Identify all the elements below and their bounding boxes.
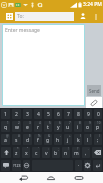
staticText: h [56,137,60,144]
staticText: 4 [37,111,40,118]
button[interactable]: ; [94,134,102,145]
button[interactable]: k [74,134,82,145]
button[interactable]: Shift [1,147,11,158]
staticText: 6 [59,121,61,125]
staticText: p [96,124,100,131]
staticText: f [37,137,39,144]
staticText: " [27,147,29,151]
button[interactable]: 7 [64,109,72,119]
staticText: ' [38,147,39,151]
staticText: c [35,150,38,157]
button[interactable]: b [52,147,60,158]
button[interactable]: Emoji [1,160,10,171]
staticText: y [57,124,60,131]
button[interactable]: ?123 [12,160,21,171]
button[interactable]: r [34,121,42,132]
button[interactable]: n [62,147,70,158]
button[interactable]: x [22,147,30,158]
button[interactable]: a [1,134,10,145]
button[interactable]: 9 [84,109,92,119]
staticText: - [60,134,61,138]
button[interactable]: 2 [12,109,21,119]
button[interactable]: Attach [86,97,102,108]
button[interactable]: Enter [93,160,102,171]
button[interactable]: p [94,121,102,132]
button[interactable]: Back [10,172,37,183]
staticText: 5 [47,111,50,118]
button[interactable]: 8 [74,109,82,119]
button[interactable]: 3 [23,109,32,119]
staticText: t [47,124,49,131]
button[interactable]: u [64,121,72,132]
button[interactable]: Add contact [78,11,88,21]
button[interactable]: 6 [54,109,62,119]
button[interactable]: Settings [84,160,91,171]
button[interactable]: , [82,147,90,158]
staticText: o [86,124,90,131]
button[interactable]: y [54,121,62,132]
staticText: v [45,150,48,157]
button[interactable]: Voice input [23,160,30,171]
staticText: 4 [39,121,41,125]
button[interactable]: Home [37,172,65,183]
button[interactable]: g [44,134,52,145]
button[interactable]: Backspace [92,147,102,158]
button[interactable]: Enter message [3,25,84,105]
staticText: r [37,124,40,131]
staticText: To: [17,13,24,20]
button[interactable]: d [23,134,32,145]
button[interactable]: t [44,121,52,132]
staticText: ; [58,147,59,151]
button[interactable]: w [12,121,21,132]
button[interactable]: . [75,160,82,171]
button[interactable]: h [54,134,62,145]
button[interactable]: Contacts [6,13,13,20]
button[interactable]: q [1,121,10,132]
staticText: 3:24 PM [83,1,102,8]
staticText: s [15,137,18,144]
staticText: : [48,147,49,151]
button[interactable]: l [84,134,92,145]
staticText: ?123 [13,163,21,168]
staticText: 2 [15,111,18,118]
staticText: k [77,137,80,144]
button[interactable]: v [42,147,50,158]
staticText: @ [6,134,9,138]
button[interactable]: f [34,134,42,145]
button[interactable]: 1 [1,109,10,119]
staticText: 9 [87,111,90,118]
button[interactable]: 4 [34,109,42,119]
button[interactable]: m [72,147,80,158]
button[interactable]: s [12,134,21,145]
button[interactable]: j [64,134,72,145]
staticText: ? [77,147,79,151]
staticText: i [77,124,79,131]
staticText: 0 [97,111,100,118]
staticText: / [99,134,101,138]
staticText: d [26,137,30,144]
button[interactable]: c [32,147,40,158]
button[interactable]: o [84,121,92,132]
button[interactable]: Send [87,85,101,96]
staticText: + [69,134,71,138]
staticText: , [85,150,87,157]
staticText: z [15,150,18,157]
staticText: . [88,147,89,151]
staticText: * [17,147,19,151]
button[interactable]: More options [91,12,100,21]
button[interactable]: z [13,147,20,158]
staticText: & [48,134,51,138]
staticText: $ [29,134,31,138]
staticText: ! [68,147,69,151]
button[interactable]: To: [15,12,74,21]
staticText: m [74,150,79,157]
button[interactable]: i [74,121,82,132]
button[interactable]: Recents [65,172,93,183]
button[interactable]: e [23,121,32,132]
staticText: 10 [97,121,101,125]
button[interactable]: 0 [94,109,102,119]
staticText: u [66,124,70,131]
button[interactable]: 5 [44,109,52,119]
staticText: 7 [69,121,71,125]
